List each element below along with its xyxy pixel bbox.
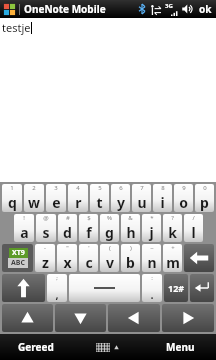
button[interactable]: 0 [195,184,214,212]
button[interactable]: 7 [132,184,151,212]
button[interactable]: # [58,214,77,242]
button[interactable]: : [142,274,162,302]
staticText: 8 [161,184,165,192]
staticText: " [66,244,69,252]
button[interactable]: 2 [24,184,44,212]
staticText: l [191,223,196,242]
button[interactable]: - [35,244,55,272]
button[interactable]: * [142,214,161,242]
button[interactable]: 9 [174,184,193,212]
staticText: @ [43,214,49,222]
button[interactable]: Gereed [0,334,72,360]
button[interactable]: Enter [190,274,214,302]
staticText: - [44,244,46,252]
button[interactable]: Keyboard [72,334,144,360]
other: Connectivity [150,4,161,15]
staticText: XT9 [12,248,25,258]
staticText: 3G [165,2,173,10]
staticText: u [137,193,147,212]
staticText: ! [23,214,25,222]
staticText: k [168,223,177,242]
staticText: g [105,223,114,242]
button[interactable]: 3 [46,184,66,212]
button[interactable]: " [57,244,77,272]
staticText: 9 [182,184,186,192]
button[interactable]: Up [2,304,53,332]
staticText: s [42,223,50,242]
staticText: c [85,253,93,272]
button[interactable]: 6 [111,184,130,212]
button[interactable]: Space [69,274,140,302]
staticText: r [75,193,82,212]
staticText: e [52,193,61,212]
button[interactable]: Right [162,304,214,332]
staticText: OneNote Mobile [24,2,106,16]
staticText: ~ [150,244,154,252]
staticText: v [106,253,114,272]
button[interactable]: Numbers and symbols [164,274,188,302]
staticText: 1 [10,184,14,192]
staticText: ) [130,244,132,252]
staticText: . [150,287,154,302]
staticText: 3 [54,184,58,192]
staticText: a [20,223,29,242]
staticText: 6 [119,184,123,192]
button[interactable]: ( [100,244,119,272]
staticText: f [86,223,92,242]
button[interactable]: Backspace [184,244,214,272]
staticText: 7 [140,184,144,192]
staticText: d [63,223,72,242]
button[interactable]: ' [79,244,98,272]
button[interactable]: ? [163,214,182,242]
button[interactable]: 5 [90,184,109,212]
staticText: 4 [76,184,80,192]
button[interactable]: Shift [2,274,45,302]
staticText: ' [88,244,90,252]
button[interactable]: + [163,244,182,272]
button[interactable]: 4 [68,184,88,212]
staticText: : [151,274,153,282]
button[interactable]: XT9 ABC mode [2,244,33,272]
button[interactable]: Down [55,304,106,332]
button[interactable]: @ [36,214,56,242]
staticText: t [96,193,103,212]
staticText: j [149,223,154,242]
staticText: Gereed [18,340,54,354]
staticText: i [160,193,165,212]
staticText: 12# [168,282,185,294]
staticText: y [117,193,125,212]
button[interactable]: ~ [142,244,161,272]
staticText: , [55,287,59,302]
staticText: n [147,253,157,272]
staticText: m [166,253,180,272]
staticText: # [66,214,70,222]
staticText: ok [199,2,212,16]
button[interactable]: ok [199,2,212,16]
button[interactable]: ! [14,214,34,242]
staticText: ? [171,214,174,222]
staticText: 5 [98,184,102,192]
button[interactable]: % [100,214,119,242]
staticText: 2 [32,184,36,192]
button[interactable]: 8 [153,184,172,212]
button[interactable]: Menu [144,334,216,360]
button[interactable]: ) [121,244,140,272]
staticText: 0 [203,184,207,192]
other: Bluetooth [139,4,145,14]
button[interactable]: Left [108,304,160,332]
staticText: q [8,193,17,212]
staticText: p [200,193,209,212]
staticText: Menu [166,340,195,354]
staticText: $ [87,214,91,222]
staticText: * [150,214,154,222]
button[interactable]: $ [79,214,98,242]
button[interactable]: & [121,214,140,242]
staticText: testje [2,20,31,35]
button[interactable]: Start [3,3,16,16]
button[interactable]: / [184,214,203,242]
button[interactable]: ; [47,274,67,302]
button[interactable]: 1 [2,184,22,212]
staticText: % [107,214,112,222]
staticText: o [179,193,188,212]
staticText: w [28,193,40,212]
